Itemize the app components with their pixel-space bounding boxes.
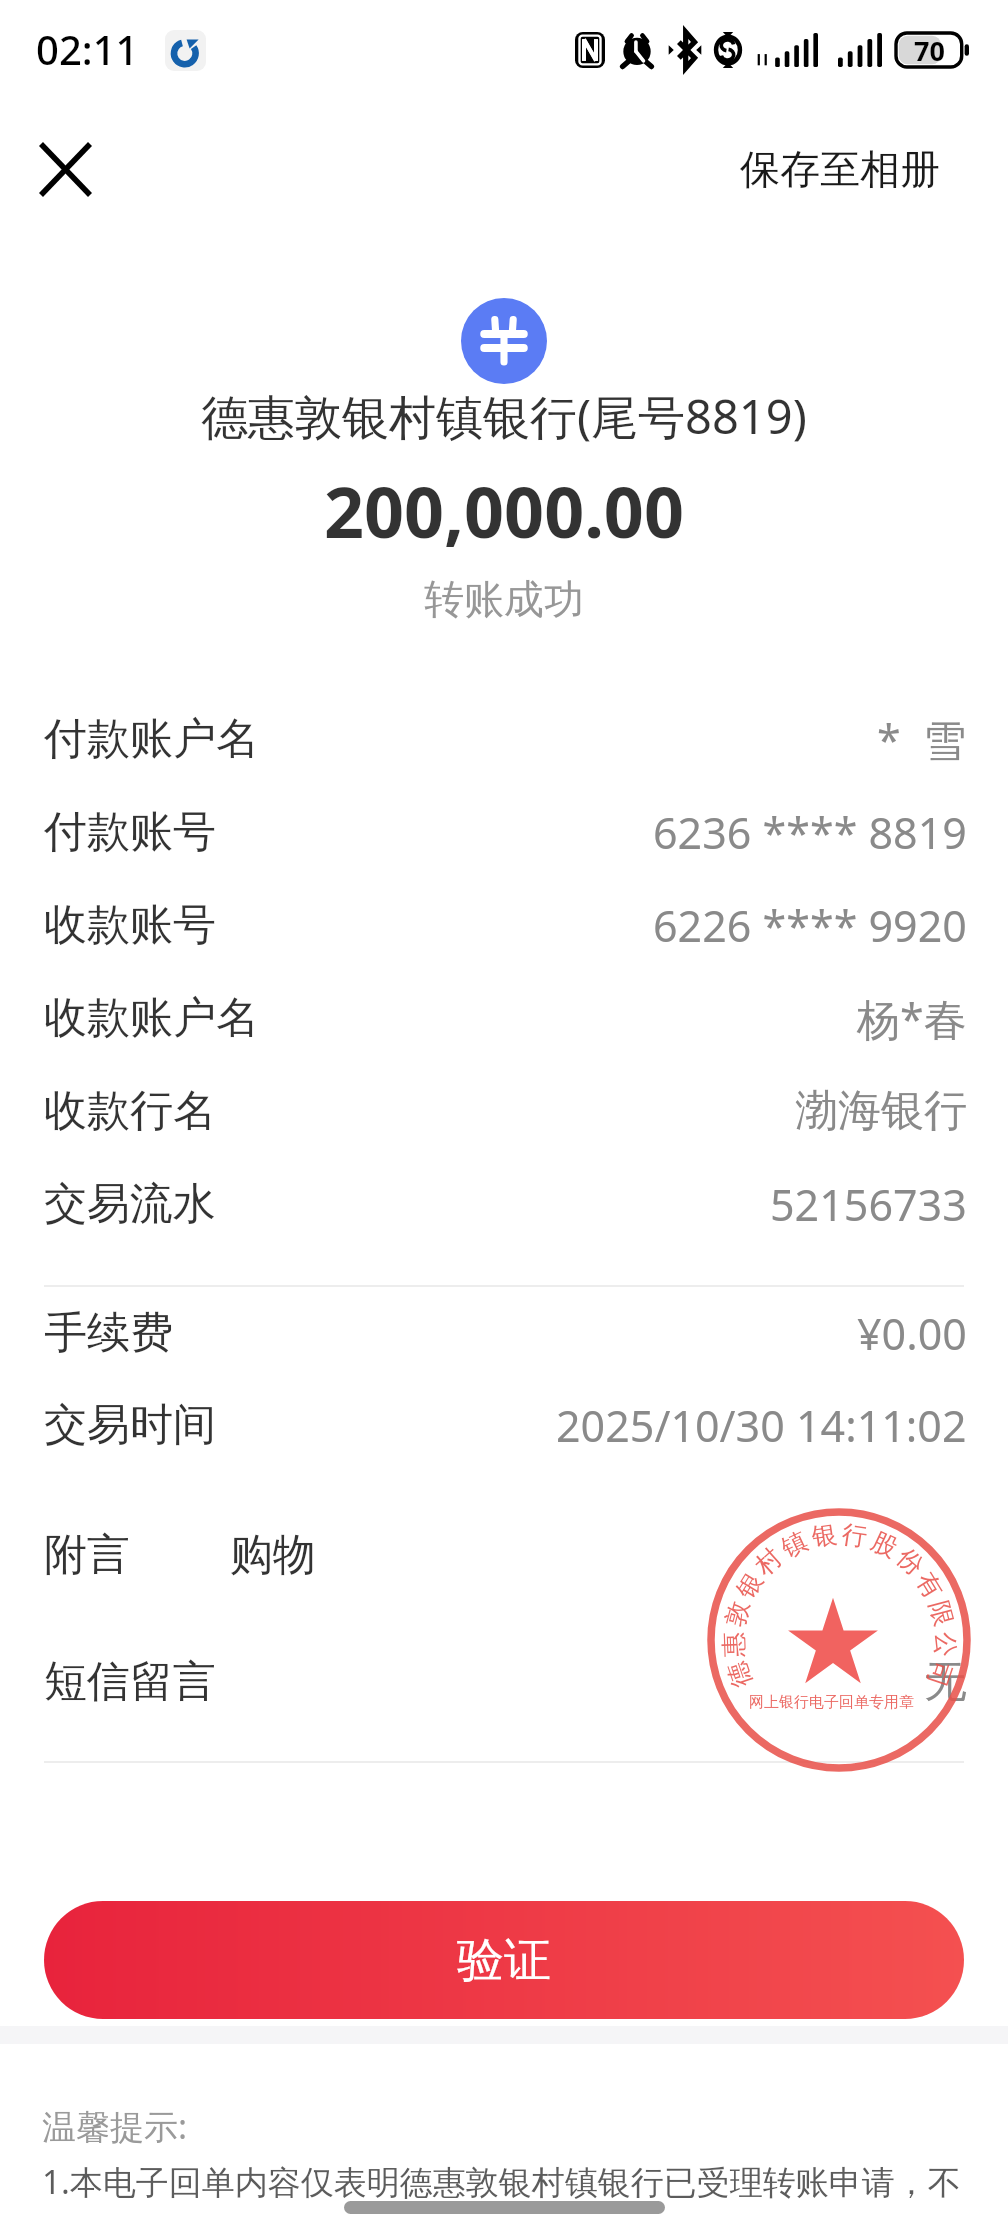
staticText: 惠 xyxy=(718,1631,749,1657)
staticText: 验证 xyxy=(457,1931,551,1990)
staticText: 行 xyxy=(840,1518,869,1553)
staticText: 200,000.00 xyxy=(324,463,684,558)
staticText: 有 xyxy=(910,1567,949,1604)
staticText: 股 xyxy=(867,1525,902,1564)
staticText: 保存至相册 xyxy=(740,144,940,194)
staticText: 付款账户名 xyxy=(44,712,259,766)
staticText: 6226 **** 9920 xyxy=(653,896,967,955)
staticText: 52156733 xyxy=(770,1175,967,1234)
staticText: 附言 xyxy=(44,1528,130,1582)
staticText: 公 xyxy=(930,1631,961,1657)
staticText: 杨*春 xyxy=(857,989,967,1048)
staticText: 敦 xyxy=(719,1597,756,1630)
button[interactable]: 验证 xyxy=(44,1901,964,2019)
staticText: 2025/10/30 14:11:02 xyxy=(556,1396,967,1455)
staticText: 短信留言 xyxy=(44,1655,216,1709)
staticText: 1.本电子回单内容仅表明德惠敦银村镇银行已受理转账申请，不 xyxy=(42,2159,961,2204)
button[interactable]: 关闭 xyxy=(21,125,109,213)
staticText: 温馨提示: xyxy=(42,2103,188,2149)
staticText: ¥0.00 xyxy=(857,1304,967,1363)
staticText: 收款行名 xyxy=(44,1084,216,1138)
staticText: 司 xyxy=(921,1658,958,1691)
staticText: 收款账号 xyxy=(44,898,216,952)
staticText: 02:11 xyxy=(36,22,139,76)
staticText: 限 xyxy=(923,1597,960,1630)
staticText: 村 xyxy=(749,1542,788,1581)
staticText: 购物 xyxy=(230,1528,316,1582)
staticText: 镇 xyxy=(777,1525,812,1564)
staticText: 收款账户名 xyxy=(44,991,259,1045)
button[interactable]: 保存至相册 xyxy=(726,132,954,206)
staticText: 手续费 xyxy=(44,1306,173,1360)
staticText: 无 xyxy=(924,1655,967,1709)
staticText: 6236 **** 8819 xyxy=(653,803,967,862)
staticText: 交易时间 xyxy=(44,1398,216,1452)
staticText: 网上银行电子回单专用章 xyxy=(749,1693,914,1712)
staticText: 份 xyxy=(891,1542,930,1581)
staticText: 付款账号 xyxy=(44,805,216,859)
staticText: 银 xyxy=(730,1567,769,1604)
staticText: * 雪 xyxy=(877,710,967,769)
staticText: 交易流水 xyxy=(44,1177,216,1231)
staticText: 70 xyxy=(914,32,945,66)
staticText: 德 xyxy=(721,1658,758,1691)
staticText: 德惠敦银村镇银行(尾号8819) xyxy=(201,384,807,448)
staticText: 渤海银行 xyxy=(795,1084,967,1138)
staticText: 银 xyxy=(810,1518,839,1553)
staticText: 转账成功 xyxy=(424,574,584,624)
